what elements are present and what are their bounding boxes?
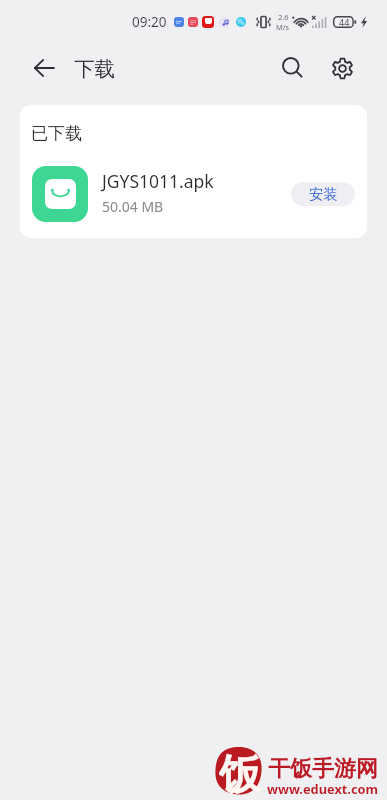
staticText: www.eduext.com xyxy=(267,780,378,797)
button[interactable]: Back xyxy=(29,53,59,83)
staticText: 44 xyxy=(339,16,350,28)
button[interactable]: Settings xyxy=(326,52,358,84)
button[interactable]: Search xyxy=(277,52,309,84)
staticText: 2.6 xyxy=(278,12,289,22)
staticText: 饭 xyxy=(219,749,261,798)
button[interactable]: JGYS1011.apk xyxy=(20,153,367,231)
staticText: 干饭手游网 xyxy=(268,755,378,783)
staticText: M/s xyxy=(276,22,290,32)
staticText: 09:20 xyxy=(132,13,167,31)
staticText: JGYS1011.apk xyxy=(102,169,214,193)
staticText: 50.04 MB xyxy=(102,197,164,216)
button[interactable]: 安装 xyxy=(291,182,355,206)
staticText: 已下载 xyxy=(31,123,82,144)
staticText: 下载 xyxy=(74,56,115,82)
staticText: 安装 xyxy=(309,185,338,203)
